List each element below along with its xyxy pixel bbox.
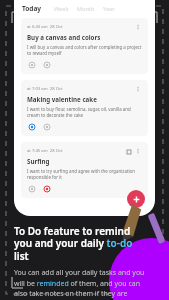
staticText: I want to buy flour, semolina, sugar, oi…	[27, 106, 142, 118]
button[interactable]: More options	[134, 85, 142, 93]
staticText: To Do feature to remind you and your dai…	[14, 224, 145, 263]
button[interactable]: Attachment	[27, 60, 36, 69]
staticText: at 6:43 am 28 Oct	[27, 24, 63, 30]
button[interactable]: Add task	[127, 190, 145, 208]
button[interactable]: Year	[99, 5, 119, 12]
button[interactable]: Month	[73, 5, 99, 12]
staticText: You can add all your daily tasks and you…	[14, 268, 145, 300]
staticText: I will buy a canvas and colors after com…	[27, 44, 142, 56]
staticText: Buy a canvas and colors	[27, 33, 101, 41]
button[interactable]: Today	[22, 4, 42, 13]
button[interactable]: Reminder	[42, 122, 51, 131]
staticText: Surfing	[27, 157, 50, 165]
button[interactable]: Flag	[125, 148, 132, 155]
staticText: Month	[77, 5, 95, 12]
button[interactable]: Week	[50, 5, 73, 12]
staticText: at 7:03 am 28 Oct	[27, 86, 63, 92]
staticText: at 7:45 am 28 Oct	[27, 148, 63, 154]
staticText: Making valentine cake	[27, 95, 97, 103]
button[interactable]: More options	[134, 23, 142, 31]
button[interactable]: at 7:03 am 28 Oct	[21, 80, 148, 136]
staticText: I want to try surfing and agree with the…	[27, 168, 142, 180]
button[interactable]: More options	[134, 147, 142, 155]
button[interactable]: Reminder	[42, 60, 51, 69]
button[interactable]: at 7:45 am 28 Oct	[21, 142, 148, 198]
button[interactable]: Attachment	[27, 122, 36, 131]
staticText: Year	[103, 5, 115, 12]
button[interactable]: at 6:43 am 28 Oct	[21, 18, 148, 74]
button[interactable]: Reminder	[42, 184, 51, 193]
staticText: Week	[54, 5, 69, 12]
staticText: Today	[22, 4, 42, 13]
button[interactable]: Attachment	[27, 184, 36, 193]
